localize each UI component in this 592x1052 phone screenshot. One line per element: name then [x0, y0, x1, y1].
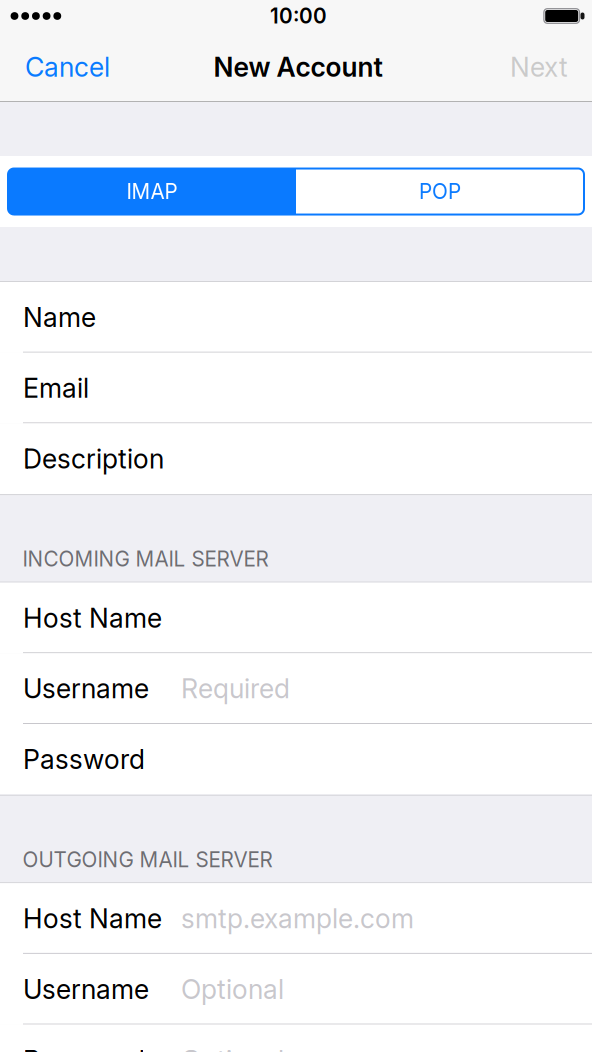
staticText: Username [23, 973, 149, 1005]
button[interactable]: IMAP [8, 168, 296, 214]
button[interactable]: Username [0, 653, 592, 724]
button[interactable]: Email [0, 353, 592, 423]
staticText: Host Name [23, 902, 162, 935]
button[interactable]: Password [0, 724, 592, 795]
button[interactable]: Username [0, 954, 592, 1025]
staticText: Username [23, 672, 149, 705]
button[interactable]: Host Name [0, 583, 592, 653]
staticText: Name [23, 301, 96, 333]
button[interactable]: Description [0, 423, 592, 494]
staticText: Cancel [25, 51, 110, 83]
button[interactable]: Password [0, 1025, 592, 1052]
staticText: New Account [213, 51, 382, 83]
staticText: POP [419, 179, 461, 204]
button[interactable]: POP [296, 168, 584, 214]
staticText: Host Name [23, 602, 162, 634]
staticText: Password [23, 743, 145, 775]
staticText: Description [23, 443, 164, 475]
staticText: Next [510, 51, 568, 83]
staticText: OUTGOING MAIL SERVER [22, 847, 272, 872]
staticText: 10:00 [270, 3, 327, 28]
staticText: Required [181, 672, 290, 705]
staticText: Optional [181, 973, 284, 1005]
button[interactable]: Cancel [0, 39, 124, 95]
staticText: IMAP [126, 179, 177, 204]
staticText: smtp.example.com [181, 902, 414, 935]
button[interactable]: Host Name [0, 883, 592, 954]
staticText: INCOMING MAIL SERVER [22, 547, 268, 572]
button[interactable]: Name [0, 282, 592, 353]
staticText: Email [23, 372, 89, 404]
staticText: Optional [181, 1044, 284, 1052]
staticText: Password [23, 1044, 145, 1052]
button[interactable]: Next [496, 39, 592, 95]
